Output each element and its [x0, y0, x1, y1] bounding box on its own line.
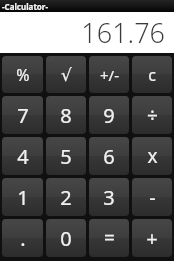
staticText: 5: [60, 143, 72, 170]
staticText: %: [16, 64, 30, 86]
staticText: +/-: [100, 65, 119, 85]
staticText: 7: [17, 102, 29, 129]
button[interactable]: Minus: [132, 178, 172, 216]
button[interactable]: 7: [2, 96, 43, 134]
button[interactable]: Clear: [132, 56, 172, 93]
staticText: 9: [103, 102, 115, 129]
button[interactable]: 2: [46, 178, 86, 216]
button[interactable]: 5: [46, 137, 86, 175]
staticText: 6: [103, 143, 115, 170]
staticText: ÷: [147, 102, 158, 128]
button[interactable]: Plus: [132, 219, 172, 257]
button[interactable]: Decimal point: [2, 219, 43, 257]
staticText: 2: [60, 184, 72, 211]
staticText: +: [146, 225, 158, 252]
button[interactable]: 9: [89, 96, 129, 134]
button[interactable]: Square root: [46, 56, 86, 93]
staticText: 4: [17, 143, 29, 170]
button[interactable]: 0: [46, 219, 86, 257]
staticText: c: [148, 64, 156, 86]
button[interactable]: 161.76: [0, 12, 174, 53]
staticText: 8: [60, 102, 72, 129]
staticText: -: [149, 184, 156, 211]
staticText: 3: [103, 184, 115, 211]
staticText: =: [104, 225, 115, 251]
button[interactable]: Equals: [89, 219, 129, 257]
button[interactable]: Plus minus: [89, 56, 129, 93]
staticText: √: [61, 65, 72, 85]
button[interactable]: 6: [89, 137, 129, 175]
button[interactable]: Divide: [132, 96, 172, 134]
staticText: 0: [60, 225, 72, 252]
staticText: .: [20, 225, 26, 252]
button[interactable]: 3: [89, 178, 129, 216]
staticText: 161.76: [81, 14, 165, 51]
button[interactable]: 1: [2, 178, 43, 216]
button[interactable]: Multiply: [132, 137, 172, 175]
button[interactable]: 8: [46, 96, 86, 134]
staticText: 1: [17, 184, 29, 211]
button[interactable]: 4: [2, 137, 43, 175]
button[interactable]: Percent: [2, 56, 43, 93]
staticText: -Calculator-: [2, 1, 48, 12]
staticText: x: [147, 143, 158, 169]
